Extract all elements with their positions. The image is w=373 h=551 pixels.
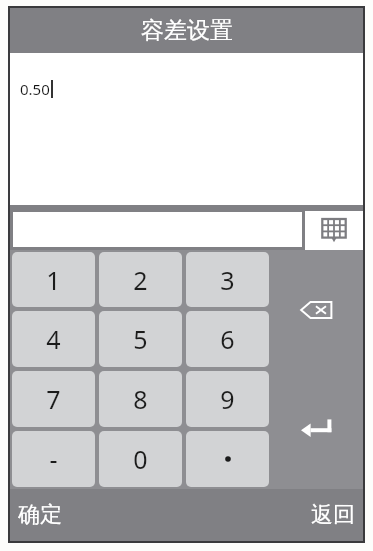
staticText: 2 bbox=[133, 263, 148, 297]
staticText: 6 bbox=[220, 322, 235, 356]
button[interactable]: 8 bbox=[99, 371, 182, 427]
button[interactable]: 9 bbox=[186, 371, 269, 427]
staticText: - bbox=[49, 442, 58, 476]
button[interactable]: 确定 bbox=[10, 489, 76, 541]
button[interactable]: 0 bbox=[99, 431, 182, 487]
button[interactable]: Hide keyboard bbox=[305, 211, 363, 250]
button[interactable]: 7 bbox=[12, 371, 95, 427]
button[interactable]: 5 bbox=[99, 311, 182, 367]
button[interactable]: Enter bbox=[271, 369, 363, 489]
button[interactable]: - bbox=[12, 431, 95, 487]
staticText: 4 bbox=[46, 322, 61, 356]
staticText: 3 bbox=[220, 263, 235, 297]
staticText: 7 bbox=[46, 382, 61, 416]
staticText: 0 bbox=[133, 442, 148, 476]
staticText: 容差设置 bbox=[141, 16, 233, 45]
button[interactable] bbox=[186, 431, 269, 487]
staticText: 5 bbox=[133, 322, 148, 356]
staticText: 返回 bbox=[311, 501, 355, 529]
staticText: 0.50 bbox=[20, 79, 50, 99]
staticText: 8 bbox=[133, 382, 148, 416]
button[interactable]: 2 bbox=[99, 252, 182, 307]
button[interactable]: 1 bbox=[12, 252, 95, 307]
staticText: 确定 bbox=[18, 501, 62, 529]
button[interactable]: 6 bbox=[186, 311, 269, 367]
staticText: 9 bbox=[220, 382, 235, 416]
button[interactable]: Backspace bbox=[271, 250, 363, 369]
staticText: 1 bbox=[46, 263, 61, 297]
button[interactable]: 返回 bbox=[297, 489, 363, 541]
button[interactable]: 4 bbox=[12, 311, 95, 367]
button[interactable]: 3 bbox=[186, 252, 269, 307]
